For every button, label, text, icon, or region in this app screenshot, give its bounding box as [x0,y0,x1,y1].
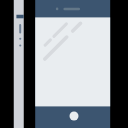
button[interactable]: Smartphone illustration [0,0,128,128]
